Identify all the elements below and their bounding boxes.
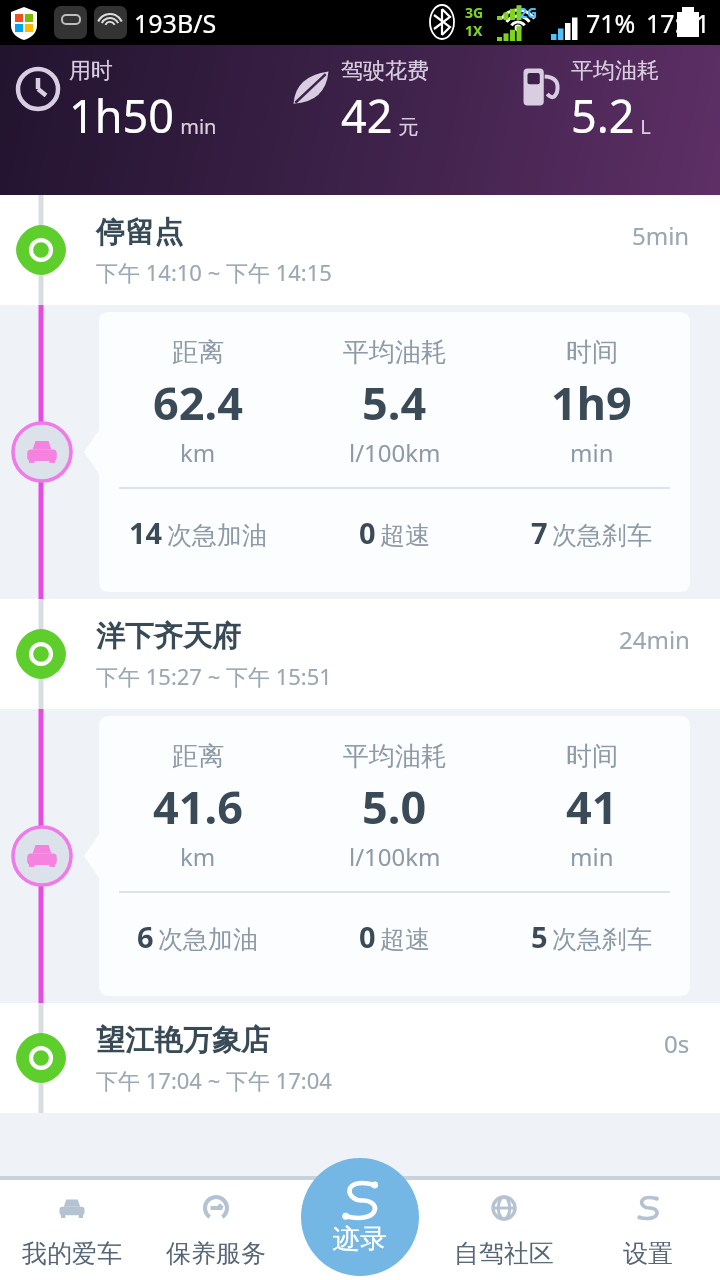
staticText: 71%	[586, 6, 636, 40]
staticText: 24min	[619, 623, 690, 656]
staticText: 时间	[566, 740, 618, 773]
staticText: min	[570, 436, 614, 469]
staticText: 元	[393, 113, 419, 140]
staticText: 望江艳万象店	[96, 1022, 270, 1059]
staticText: 2G	[519, 3, 538, 22]
staticText: 14	[129, 513, 163, 552]
staticText: 下午 17:04 ~ 下午 17:04	[96, 1065, 332, 1095]
staticText: 次急刹车	[552, 520, 652, 551]
staticText: 驾驶花费	[341, 57, 429, 85]
staticText: 平均油耗	[343, 336, 447, 369]
button[interactable]: 停留点	[0, 195, 720, 305]
button[interactable]: 距离	[99, 312, 690, 592]
staticText: 自驾社区	[454, 1238, 554, 1269]
staticText: 用时	[69, 57, 113, 85]
staticText: min	[175, 113, 217, 140]
staticText: 0	[359, 917, 376, 956]
staticText: 5	[531, 917, 548, 956]
staticText: 下午 14:10 ~ 下午 14:15	[96, 257, 332, 287]
staticText: 0	[359, 513, 376, 552]
staticText: 次急刹车	[552, 924, 652, 955]
staticText: 5.2	[571, 85, 635, 146]
staticText: 1h9	[551, 372, 632, 433]
button[interactable]: Community	[432, 1180, 576, 1280]
staticText: 距离	[172, 336, 224, 369]
staticText: 42	[341, 85, 393, 146]
staticText: L	[635, 113, 651, 140]
staticText: 6	[137, 917, 154, 956]
staticText: 迹录	[333, 1222, 387, 1256]
button[interactable]: Settings	[576, 1180, 720, 1280]
staticText: 5min	[632, 219, 690, 252]
staticText: 1h50	[69, 85, 175, 146]
staticText: km	[180, 840, 216, 873]
staticText: 3G	[465, 3, 484, 22]
staticText: 41.6	[153, 776, 243, 837]
staticText: 距离	[172, 740, 224, 773]
button[interactable]: 洋下齐天府	[0, 599, 720, 709]
staticText: 7	[531, 513, 548, 552]
staticText: 0s	[664, 1027, 690, 1060]
staticText: 次急加油	[158, 924, 258, 955]
staticText: 5.4	[362, 372, 427, 433]
button[interactable]: 距离	[99, 716, 690, 996]
staticText: 次急加油	[167, 520, 267, 551]
staticText: 停留点	[96, 214, 183, 251]
staticText: 时间	[566, 336, 618, 369]
staticText: 超速	[380, 520, 430, 551]
staticText: 平均油耗	[571, 57, 659, 85]
button[interactable]: Maintenance	[144, 1180, 288, 1280]
staticText: 5.0	[362, 776, 427, 837]
staticText: 超速	[380, 924, 430, 955]
button[interactable]: 迹录	[301, 1158, 419, 1276]
staticText: 193B/S	[134, 6, 217, 40]
staticText: 41	[566, 776, 618, 837]
staticText: l/100km	[349, 436, 441, 469]
staticText: 1X	[465, 21, 483, 40]
staticText: 我的爱车	[22, 1238, 122, 1269]
staticText: 保养服务	[166, 1238, 266, 1269]
staticText: l/100km	[349, 840, 441, 873]
button[interactable]: 望江艳万象店	[0, 1003, 720, 1113]
button[interactable]: My car	[0, 1180, 144, 1280]
staticText: 平均油耗	[343, 740, 447, 773]
staticText: km	[180, 436, 216, 469]
staticText: 62.4	[153, 372, 243, 433]
staticText: 下午 15:27 ~ 下午 15:51	[96, 661, 332, 691]
staticText: min	[570, 840, 614, 873]
staticText: 洋下齐天府	[96, 618, 241, 655]
staticText: 设置	[623, 1238, 673, 1269]
staticText: 17:21	[646, 6, 710, 40]
